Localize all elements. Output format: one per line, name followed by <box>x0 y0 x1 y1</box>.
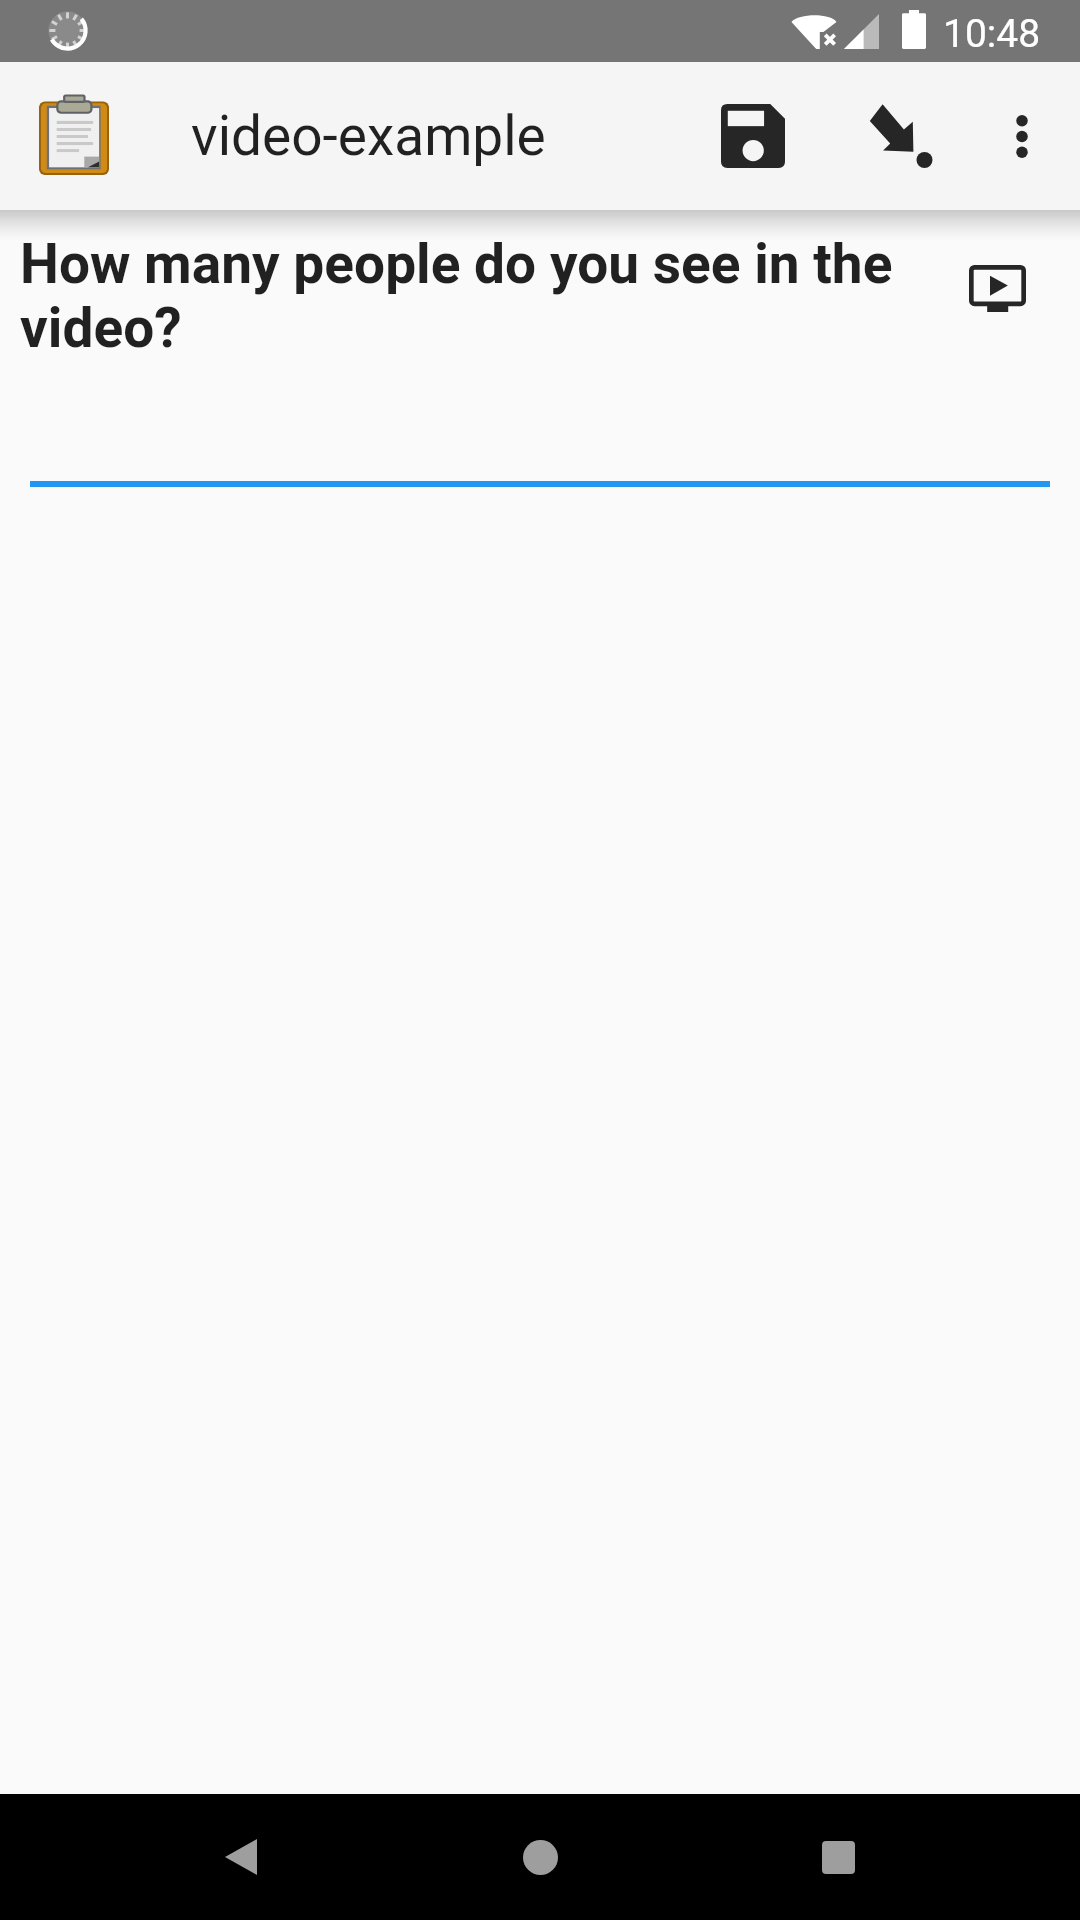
staticText: How many people do you see in the video? <box>20 232 920 360</box>
staticText: video-example <box>191 104 546 168</box>
button[interactable]: Save form <box>699 82 807 190</box>
button[interactable]: Home <box>480 1797 600 1917</box>
staticText: 10:48 <box>943 11 1041 57</box>
button[interactable]: Go to prompt <box>847 82 955 190</box>
button[interactable]: Back <box>181 1797 301 1917</box>
button[interactable]: Recent apps <box>778 1797 898 1917</box>
button[interactable]: Play video <box>955 246 1039 330</box>
button[interactable]: Answer <box>30 390 1050 487</box>
button[interactable]: Collect <box>26 87 122 183</box>
button[interactable]: More options <box>968 82 1076 190</box>
